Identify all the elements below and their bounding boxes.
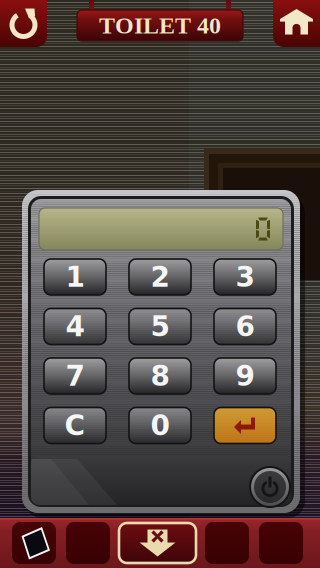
button[interactable]: Empty slot (259, 522, 303, 564)
staticText: 8 (150, 360, 169, 392)
staticText: 1 (65, 261, 84, 293)
button[interactable]: Photo (12, 522, 56, 564)
staticText: C (64, 409, 85, 442)
staticText: 4 (65, 310, 84, 343)
button[interactable]: 1 (44, 259, 106, 295)
button[interactable]: 9 (214, 358, 276, 394)
staticText: 0 (150, 409, 169, 442)
button[interactable]: 6 (214, 308, 276, 344)
staticText: 7 (65, 360, 84, 392)
staticText: 3 (235, 261, 254, 293)
staticText: 9 (235, 360, 254, 392)
button[interactable]: Power (249, 466, 291, 508)
staticText: 6 (235, 310, 254, 343)
button[interactable]: 3 (214, 259, 276, 295)
staticText: 5 (150, 310, 169, 343)
button[interactable]: 8 (129, 358, 191, 394)
button[interactable]: C (44, 407, 106, 443)
button[interactable]: Empty slot (66, 522, 110, 564)
button[interactable]: 4 (44, 308, 106, 344)
button[interactable]: Close panel (119, 523, 196, 563)
button[interactable]: 7 (44, 358, 106, 394)
button[interactable]: Enter (214, 407, 276, 443)
button[interactable]: Restart (0, 0, 47, 47)
button[interactable]: 0 (129, 407, 191, 443)
staticText: 2 (150, 261, 169, 293)
button[interactable]: 2 (129, 259, 191, 295)
button[interactable]: Home (273, 0, 320, 47)
staticText: TOILET 40 (99, 12, 221, 39)
button[interactable]: 5 (129, 308, 191, 344)
button[interactable]: Empty slot (205, 522, 249, 564)
